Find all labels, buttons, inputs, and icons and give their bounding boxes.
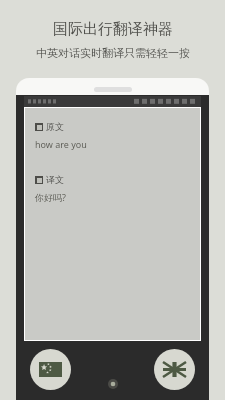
staticText: 译文 — [46, 174, 64, 185]
button[interactable]: 原文 — [35, 121, 64, 132]
staticText: how are you — [35, 138, 87, 150]
staticText: 原文 — [46, 121, 64, 132]
staticText: 你好吗? — [35, 191, 66, 203]
button[interactable]: 译文 — [35, 174, 64, 185]
button[interactable]: English — [154, 349, 195, 390]
button[interactable]: Speaker — [108, 379, 118, 389]
staticText: 国际出行翻译神器 — [53, 20, 173, 39]
staticText: 中英对话实时翻译只需轻轻一按 — [36, 46, 190, 60]
button[interactable]: Chinese — [30, 349, 71, 390]
